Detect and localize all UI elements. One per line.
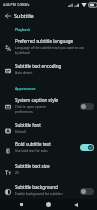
button[interactable]: Disabled <box>80 103 94 110</box>
staticText: Subtitle text size <box>15 163 50 169</box>
button[interactable]: Disabled <box>80 188 94 195</box>
staticText: Default <box>15 130 26 134</box>
staticText: 4:46 PM 0.9KB/s <box>3 2 30 7</box>
staticText: Preferred subtitle language <box>15 38 74 44</box>
staticText: Subtitle <box>14 12 34 19</box>
staticText: System caption style <box>15 97 59 103</box>
staticText: Subtitle text encoding <box>15 63 62 69</box>
button[interactable]: Home <box>43 199 54 210</box>
button[interactable]: Back <box>70 199 81 210</box>
staticText: Use bold text for subs <box>15 149 48 153</box>
staticText: Bold subtitle text <box>15 141 51 147</box>
staticText: 20 <box>15 171 19 175</box>
button[interactable]: Navigate up <box>2 10 13 21</box>
staticText: Subtitle font <box>15 122 41 128</box>
button: Appearance <box>15 86 36 91</box>
button[interactable] <box>0 36 97 57</box>
button[interactable] <box>0 161 97 178</box>
staticText: Auto detect <box>15 71 33 75</box>
staticText: Enable background for subtitles <box>15 192 63 196</box>
button[interactable] <box>0 95 97 116</box>
staticText: Language of the subtitle track you want … <box>15 46 85 55</box>
staticText: Click to open system preferences <box>15 105 46 114</box>
button[interactable]: Recent apps <box>16 199 27 210</box>
button: Playback <box>15 27 31 32</box>
button[interactable] <box>0 120 97 137</box>
button[interactable]: Enabled <box>80 144 94 151</box>
staticText: Subtitle background <box>15 184 58 190</box>
button[interactable] <box>0 139 97 156</box>
button[interactable] <box>0 61 97 78</box>
button[interactable] <box>0 182 97 199</box>
